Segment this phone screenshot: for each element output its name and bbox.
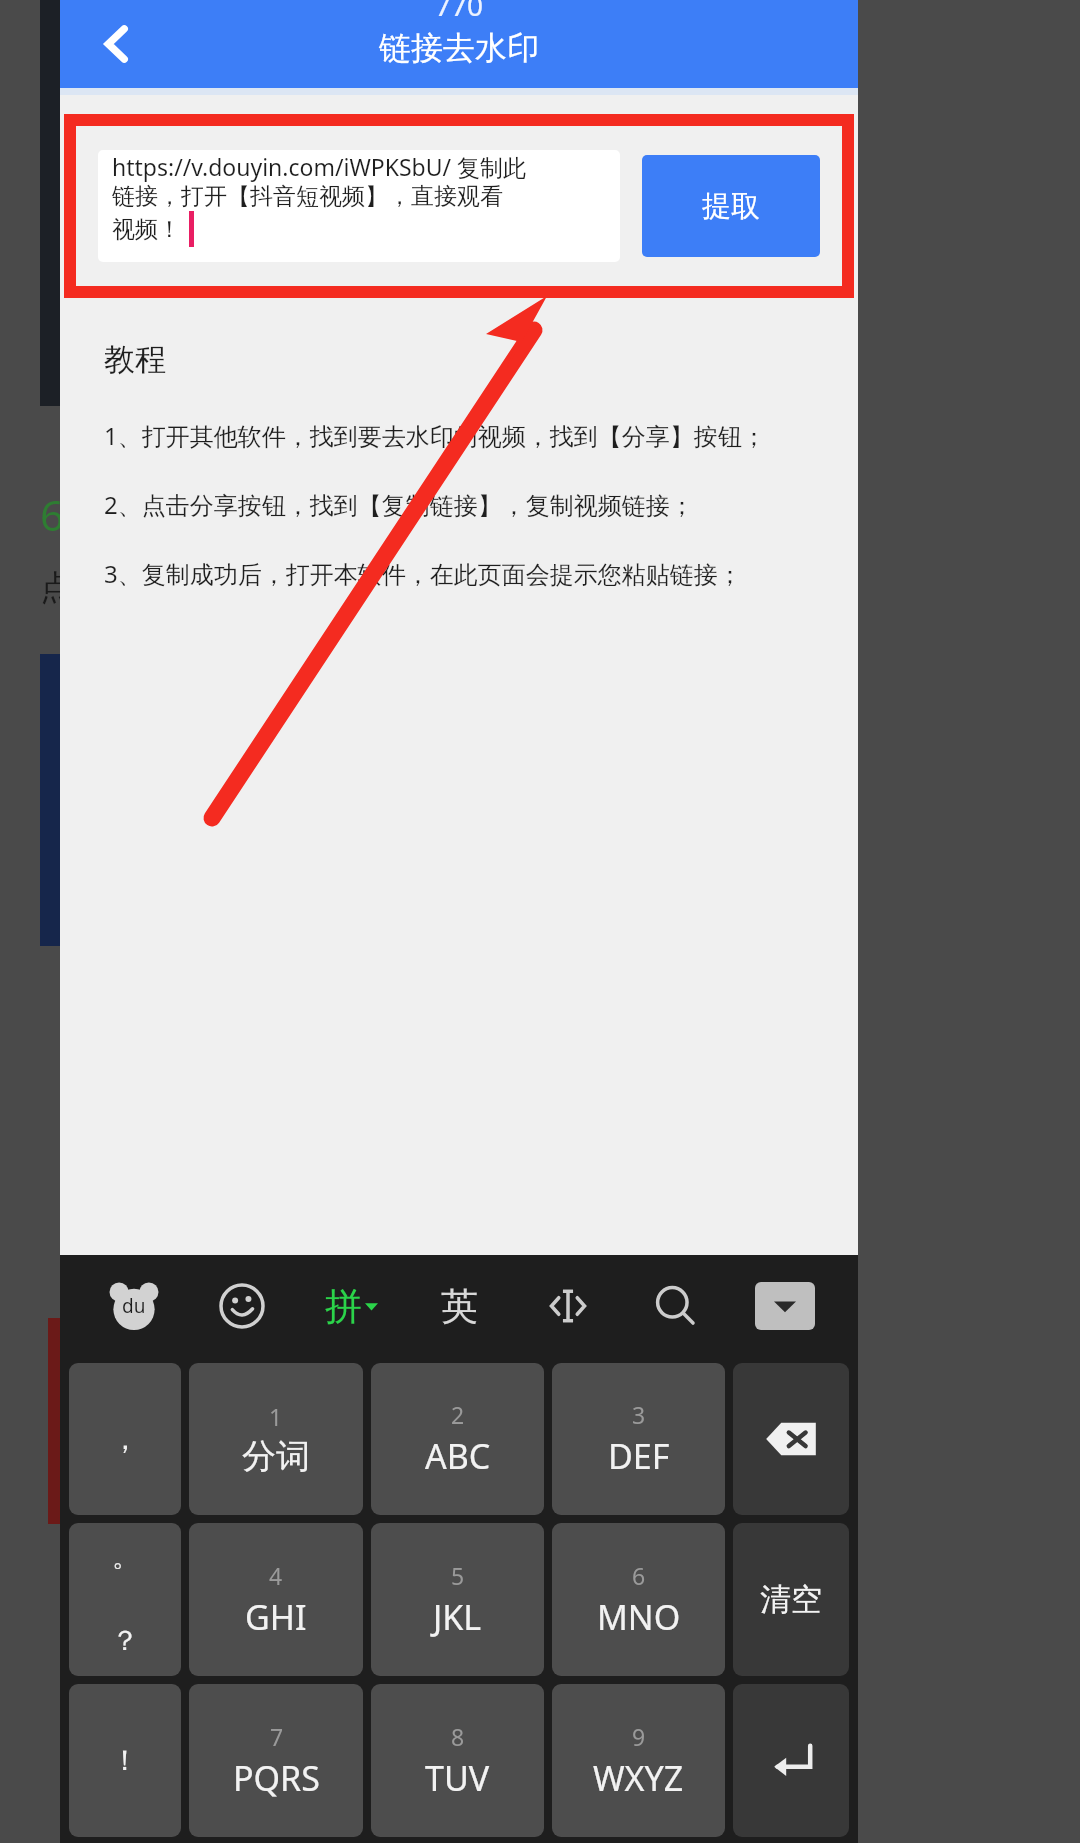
button[interactable]: 7 <box>189 1684 363 1837</box>
button[interactable]: https://v.douyin.com/iWPKSbU/ 复制此 <box>98 150 620 262</box>
button[interactable]: Move cursor <box>525 1261 611 1351</box>
button[interactable]: 4 <box>189 1523 363 1676</box>
button[interactable]: Enter <box>733 1684 849 1837</box>
staticText: ， <box>111 1422 139 1457</box>
staticText: 1 <box>269 1401 283 1432</box>
staticText: 4 <box>269 1560 283 1591</box>
button[interactable]: 3 <box>552 1363 725 1515</box>
staticText: 3 <box>632 1399 646 1430</box>
button[interactable]: 。 <box>69 1523 181 1676</box>
staticText: 1、打开其他软件，找到要去水印的视频，找到【分享】按钮； <box>104 419 766 452</box>
button[interactable]: 2 <box>371 1363 544 1515</box>
staticText: 点 <box>40 566 74 609</box>
staticText: DEF <box>608 1433 670 1479</box>
staticText: 3、复制成功后，打开本软件，在此页面会提示您粘贴链接； <box>104 557 742 590</box>
staticText: ？ <box>111 1623 139 1658</box>
staticText: du <box>122 1293 146 1319</box>
button[interactable]: 清空 <box>733 1523 849 1676</box>
staticText: 英 <box>441 1283 478 1330</box>
staticText: PQRS <box>233 1755 320 1801</box>
staticText: 链接去水印 <box>379 28 539 68</box>
button[interactable]: 8 <box>371 1684 544 1837</box>
button[interactable]: 6 <box>552 1523 725 1676</box>
staticText: MNO <box>597 1594 681 1640</box>
staticText: 清空 <box>760 1580 822 1619</box>
button[interactable]: ！ <box>69 1684 181 1837</box>
staticText: ！ <box>111 1743 139 1778</box>
staticText: 链接，打开【抖音短视频】，直接观看 <box>112 182 503 211</box>
staticText: 拼 <box>325 1283 362 1330</box>
button[interactable]: Pinyin mode <box>308 1261 394 1351</box>
staticText: 提取 <box>702 188 760 225</box>
button[interactable]: 提取 <box>642 155 820 257</box>
button[interactable]: 5 <box>371 1523 544 1676</box>
staticText: TUV <box>425 1755 490 1801</box>
staticText: 教程 <box>104 340 166 379</box>
staticText: 9 <box>632 1721 646 1752</box>
staticText: GHI <box>245 1594 307 1640</box>
staticText: 6 <box>40 486 65 543</box>
button[interactable]: Search <box>633 1261 719 1351</box>
staticText: JKL <box>433 1594 482 1640</box>
button[interactable]: Emoji <box>199 1261 285 1351</box>
staticText: WXYZ <box>593 1755 684 1801</box>
staticText: 2 <box>451 1399 465 1430</box>
staticText: 6 <box>632 1560 646 1591</box>
button[interactable]: English mode <box>416 1261 502 1351</box>
staticText: 8 <box>451 1721 465 1752</box>
staticText: 分词 <box>242 1435 310 1478</box>
staticText: https://v.douyin.com/iWPKSbU/ 复制此 <box>112 151 527 182</box>
staticText: ABC <box>425 1433 491 1479</box>
button[interactable]: Input method <box>91 1261 177 1351</box>
staticText: 5 <box>451 1560 465 1591</box>
staticText: 770 <box>435 0 484 24</box>
staticText: 。 <box>112 1541 138 1574</box>
button[interactable]: Backspace <box>733 1363 849 1515</box>
button[interactable]: Hide keyboard <box>742 1261 828 1351</box>
staticText: 视频！ <box>112 215 181 244</box>
button[interactable]: 9 <box>552 1684 725 1837</box>
button[interactable]: ， <box>69 1363 181 1515</box>
button[interactable]: Back <box>78 5 156 83</box>
staticText: 7 <box>270 1721 284 1752</box>
staticText: 2、点击分享按钮，找到【复制链接】，复制视频链接； <box>104 488 694 521</box>
button[interactable]: 1 <box>189 1363 363 1515</box>
